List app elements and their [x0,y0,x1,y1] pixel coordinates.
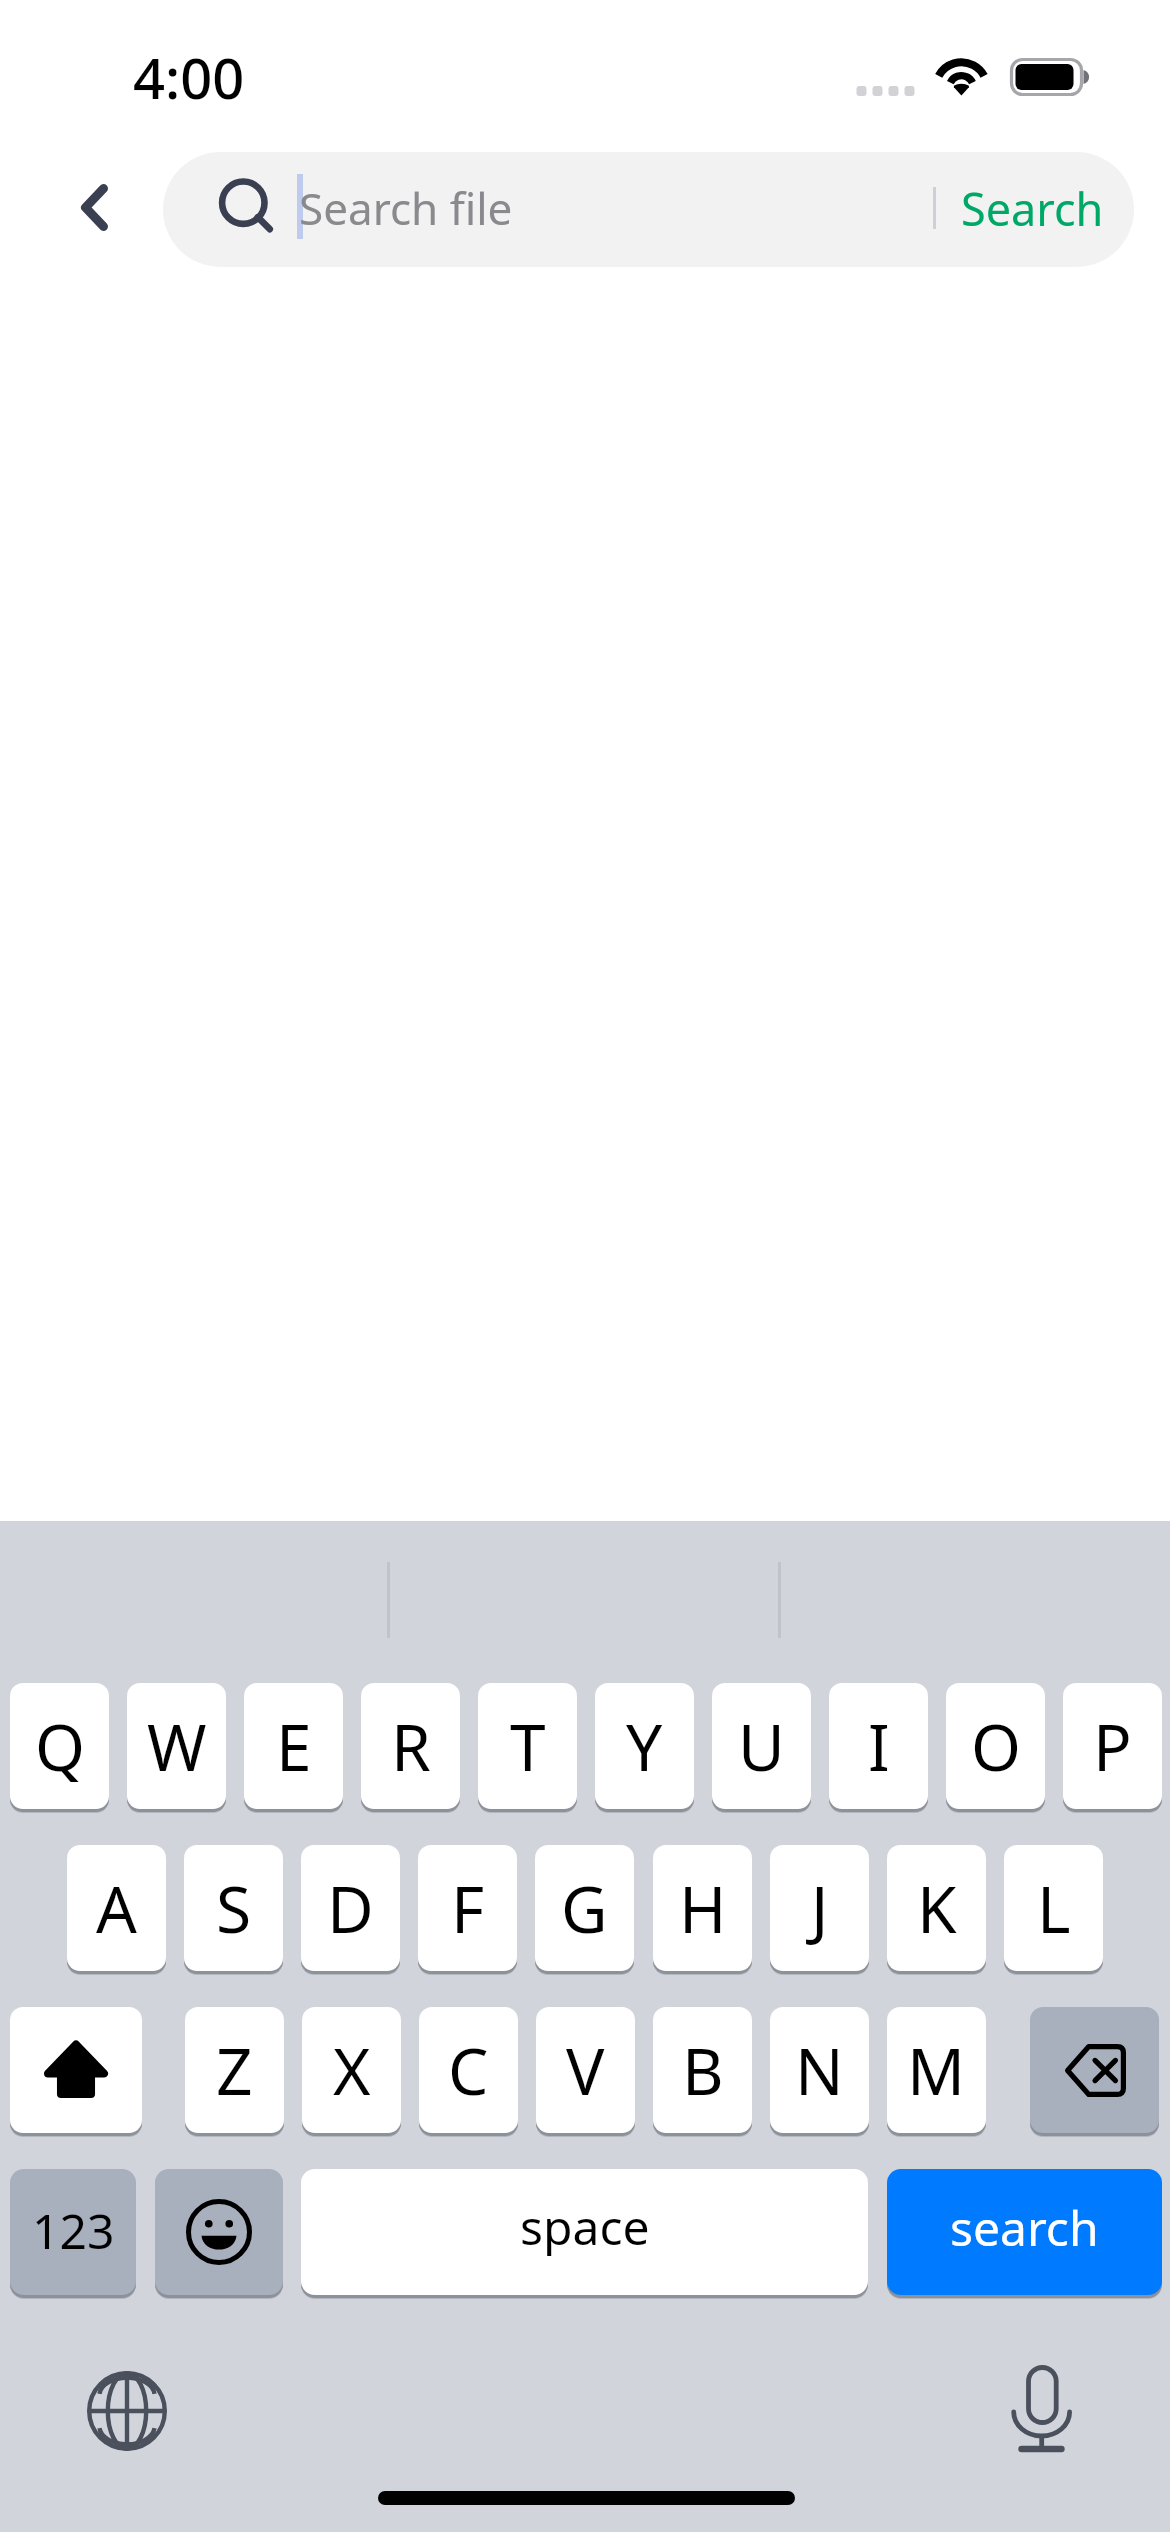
button[interactable]: Search [942,152,1122,267]
button[interactable]: J [770,1845,869,1971]
staticText: P [1093,1703,1132,1790]
button[interactable]: I [829,1683,928,1809]
staticText: H [679,1865,727,1952]
staticText: D [327,1865,374,1952]
staticText: U [738,1703,785,1790]
staticText: V [566,2027,605,2114]
button[interactable]: K [887,1845,986,1971]
staticText: C [448,2027,489,2114]
staticText: G [561,1865,608,1952]
staticText: W [147,1703,207,1790]
button[interactable]: Z [185,2007,284,2133]
button[interactable]: Q [10,1683,109,1809]
staticText: A [96,1865,137,1952]
staticText: S [216,1865,252,1952]
staticText: X [333,2027,371,2114]
button[interactable]: D [301,1845,400,1971]
staticText: space [520,2194,650,2259]
button[interactable]: Y [595,1683,694,1809]
staticText: E [276,1703,312,1790]
button[interactable]: A [67,1845,166,1971]
staticText: search [950,2195,1099,2260]
staticText: Search file [299,178,513,238]
button[interactable]: space [301,2169,868,2295]
button[interactable]: W [127,1683,226,1809]
staticText: Q [35,1703,85,1790]
button[interactable]: T [478,1683,577,1809]
button[interactable]: G [535,1845,634,1971]
staticText: Y [626,1703,663,1790]
button[interactable]: Search file [163,152,1134,267]
button[interactable]: E [244,1683,343,1809]
button[interactable]: S [184,1845,283,1971]
button[interactable]: Emoji [155,2169,283,2295]
button[interactable]: U [712,1683,811,1809]
button[interactable]: 123 [10,2169,136,2295]
staticText: I [868,1703,890,1790]
staticText: K [917,1865,957,1952]
button[interactable]: H [653,1845,752,1971]
staticText: Z [216,2027,253,2114]
button[interactable]: C [419,2007,518,2133]
staticText: O [971,1703,1021,1790]
staticText: F [451,1865,485,1952]
staticText: 4:00 [133,39,245,115]
button[interactable]: B [653,2007,752,2133]
button[interactable]: R [361,1683,460,1809]
staticText: L [1037,1865,1071,1952]
staticText: J [811,1865,829,1952]
staticText: Search [961,178,1104,239]
button[interactable]: Backspace [1030,2007,1159,2133]
button[interactable]: O [946,1683,1045,1809]
button[interactable]: Back [53,160,133,240]
button[interactable]: L [1004,1845,1103,1971]
staticText: R [391,1703,431,1790]
button[interactable]: search [887,2169,1162,2295]
button[interactable]: Change keyboard [83,2367,171,2455]
staticText: 123 [32,2198,115,2263]
staticText: B [682,2027,724,2114]
staticText: N [795,2027,844,2114]
button[interactable]: F [418,1845,517,1971]
button[interactable]: P [1063,1683,1162,1809]
button[interactable]: N [770,2007,869,2133]
button[interactable]: M [887,2007,986,2133]
staticText: T [510,1703,546,1790]
staticText: M [907,2027,966,2114]
button[interactable]: V [536,2007,635,2133]
button[interactable]: X [302,2007,401,2133]
button[interactable]: Voice input [999,2360,1085,2446]
button[interactable]: Shift [10,2007,142,2133]
